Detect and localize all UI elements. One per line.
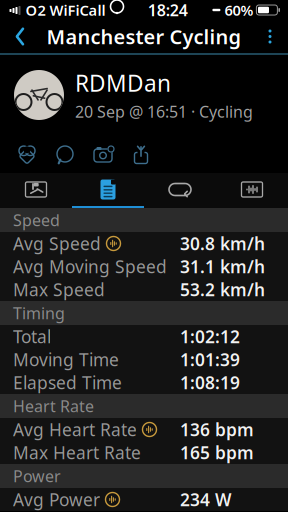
staticText: 136 bpm [180,418,254,441]
staticText: Power [13,465,61,487]
staticText: 31.1 km/h [180,255,265,278]
button[interactable]: Like [8,137,46,171]
staticText: 1:01:39 [180,348,240,371]
staticText: Total [13,325,51,348]
staticText: 18:24 [148,0,188,21]
button[interactable]: Details [72,173,144,206]
staticText: Avg Heart Rate [13,418,137,441]
staticText: 30.8 km/h [180,232,265,255]
staticText: 60% [224,0,253,20]
staticText: Timing [13,302,65,324]
button[interactable]: Add photo [84,137,122,171]
button[interactable]: Elapsed Time [0,371,288,394]
staticText: RDMDan [75,68,171,98]
button[interactable]: Moving Time [0,348,288,371]
button[interactable]: Total [0,325,288,348]
button[interactable]: Avg Speed [0,232,288,255]
staticText: Avg Moving Speed [13,255,167,278]
staticText: Avg Power [13,488,100,511]
staticText: Max Speed [13,278,105,301]
button[interactable]: Max Speed [0,278,288,301]
button[interactable]: Avg Moving Speed [0,255,288,278]
staticText: 165 bpm [180,441,254,464]
staticText: Avg Speed [13,232,101,255]
staticText: 234 W [180,488,232,511]
staticText: 53.2 km/h [180,278,265,301]
staticText: 1:08:19 [180,371,240,394]
staticText: Heart Rate [13,395,94,417]
button[interactable]: Share [122,137,160,171]
button[interactable]: Avg Heart Rate [0,418,288,441]
button[interactable]: Comment [46,137,84,171]
button[interactable]: Back [0,20,40,53]
staticText: Speed [13,209,60,231]
staticText: Max Heart Rate [13,441,141,464]
staticText: 20 Sep @ 16:51 · Cycling [75,101,253,122]
staticText: Moving Time [13,348,119,371]
staticText: Elapsed Time [13,371,122,394]
staticText: O2 WiFiCall [25,0,105,20]
button[interactable]: Avg Power [0,488,288,511]
button[interactable]: Charts [216,173,288,206]
button[interactable]: Laps [144,173,216,206]
button[interactable]: Max Heart Rate [0,441,288,464]
staticText: 1:02:12 [180,325,240,348]
button[interactable]: More options [252,20,288,53]
staticText: Manchester Cycling [46,23,241,50]
button[interactable]: Map [0,173,72,206]
